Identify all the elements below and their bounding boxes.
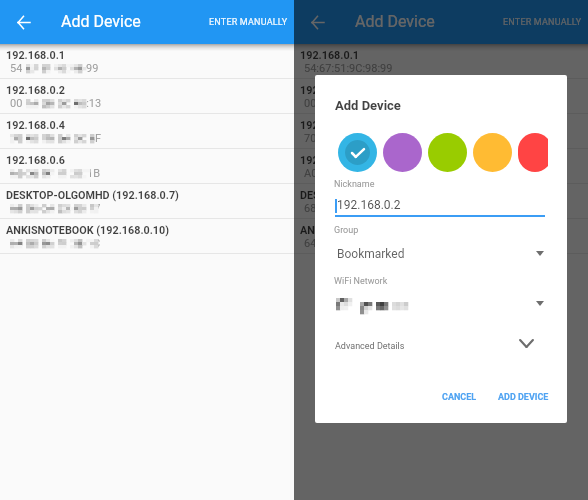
staticText: 192.168.0.1: [300, 49, 359, 62]
staticText: 192.168.0.4: [300, 119, 359, 132]
staticText: A0:36:9F:11:2C:1B: [304, 167, 395, 180]
button[interactable]: ANKISNOTEBOOK (192.168.0.10): [294, 219, 588, 254]
staticText: A0:36:9F:11:2C:1B: [10, 167, 101, 180]
staticText: Add Device: [355, 12, 435, 31]
staticText: WiFi Network: [334, 276, 388, 287]
staticText: Group: [334, 225, 359, 236]
button[interactable]: CANCEL: [430, 380, 489, 415]
button[interactable]: Back: [298, 3, 336, 41]
staticText: 192.168.0.1: [6, 49, 65, 62]
staticText: 68:05:CA:23:9D:77: [10, 202, 101, 215]
staticText: 192.168.0.6: [300, 154, 359, 167]
staticText: Advanced Details: [335, 341, 405, 352]
button[interactable]: ANKISNOTEBOOK (192.168.0.10): [0, 219, 294, 254]
staticText: 70:4D:7B:0A:3C:8F: [10, 132, 102, 145]
button[interactable]: ENTER MANUALLY: [494, 8, 588, 37]
staticText: 192.168.0.2: [6, 84, 65, 97]
button[interactable]: DESKTOP-OLGOMHD (192.168.0.7): [0, 184, 294, 219]
button[interactable]: Colour swatch: [338, 133, 377, 172]
staticText: 192.168.0.4: [6, 119, 65, 132]
button[interactable]: 192.168.0.2: [294, 79, 588, 114]
button[interactable]: Advanced Details: [315, 331, 567, 359]
staticText: ADD DEVICE: [498, 392, 549, 403]
button[interactable]: 192.168.0.1: [294, 44, 588, 79]
staticText: 54:67:51:9C:98:99: [304, 62, 393, 75]
staticText: 68:05:CA:23:9D:77: [304, 202, 395, 215]
staticText: DESKTOP-OLGOMHD (192.168.0.7): [6, 189, 179, 202]
button[interactable]: Colour swatch: [428, 133, 467, 172]
button[interactable]: 192.168.0.6: [294, 149, 588, 184]
staticText: 64:5D:86:71:3B:1C: [304, 237, 395, 250]
staticText: 192.168.0.2: [300, 84, 359, 97]
button[interactable]: Colour swatch: [473, 133, 512, 172]
button[interactable]: 192.168.0.4: [0, 114, 294, 149]
button[interactable]: 192.168.0.2: [0, 79, 294, 114]
button[interactable]: ADD DEVICE: [486, 380, 561, 415]
button[interactable]: 192.168.0.6: [0, 149, 294, 184]
staticText: Bookmarked: [337, 247, 405, 261]
button[interactable]: Back: [4, 3, 42, 41]
button[interactable]: ENTER MANUALLY: [200, 8, 297, 37]
staticText: 192.168.0.6: [6, 154, 65, 167]
staticText: ENTER MANUALLY: [503, 17, 582, 28]
staticText: DESKTOP-OLGOMHD (192.168.0.7): [300, 189, 473, 202]
staticText: Add Device: [335, 98, 401, 113]
button[interactable]: Colour swatch: [518, 133, 548, 172]
staticText: 54:67:51:9C:98:99: [10, 62, 99, 75]
staticText: Nickname: [334, 179, 375, 190]
staticText: ANKISNOTEBOOK (192.168.0.10): [6, 224, 170, 237]
staticText: Add Device: [61, 12, 141, 31]
staticText: ENTER MANUALLY: [209, 17, 288, 28]
button[interactable]: Colour swatch: [383, 133, 422, 172]
button[interactable]: 192.168.0.4: [294, 114, 588, 149]
staticText: 192.168.0.2: [337, 198, 401, 212]
staticText: CANCEL: [442, 392, 477, 403]
button[interactable]: DESKTOP-OLGOMHD (192.168.0.7): [294, 184, 588, 219]
button[interactable]: 192.168.0.1: [0, 44, 294, 79]
staticText: 00:1A:2B:3C:4D:13: [10, 97, 102, 110]
staticText: 00:1A:2B:3C:4D:13: [304, 97, 396, 110]
staticText: 64:5D:86:71:3B:1C: [10, 237, 101, 250]
staticText: 70:4D:7B:0A:3C:8F: [304, 132, 396, 145]
staticText: ANKISNOTEBOOK (192.168.0.10): [300, 224, 464, 237]
